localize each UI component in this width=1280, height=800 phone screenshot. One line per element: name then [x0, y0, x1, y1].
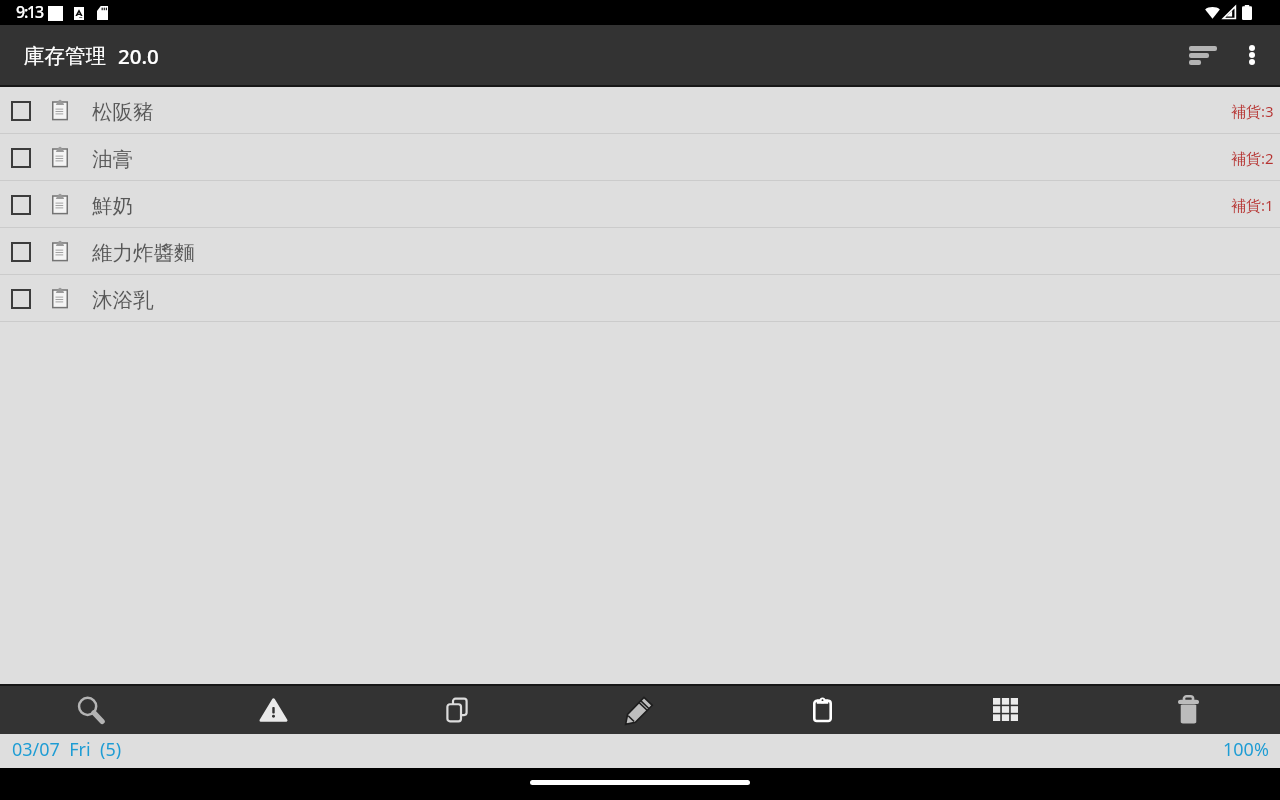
button[interactable]: 維力炸醬麵 — [0, 228, 1280, 274]
staticText: 庫存管理 — [24, 43, 106, 69]
button[interactable]: Edit — [548, 686, 731, 734]
button[interactable]: Warnings — [182, 686, 365, 734]
button[interactable]: Search — [0, 686, 182, 734]
staticText: 補貨:3 — [1231, 101, 1274, 121]
staticText: 20.0 — [118, 42, 159, 70]
button[interactable]: Copy — [365, 686, 548, 734]
staticText: 油膏 — [92, 146, 133, 172]
button[interactable]: Delete — [1097, 686, 1280, 734]
button[interactable]: Grid view — [914, 686, 1097, 734]
staticText: 9:13 — [16, 1, 44, 23]
staticText: 維力炸醬麵 — [92, 240, 195, 266]
button[interactable]: Sort — [1168, 27, 1224, 83]
button[interactable]: More options — [1224, 27, 1280, 83]
button[interactable]: 油膏 — [0, 134, 1280, 180]
button[interactable]: Clipboard — [731, 686, 914, 734]
staticText: 鮮奶 — [92, 193, 133, 219]
staticText: 沐浴乳 — [92, 287, 154, 313]
staticText: 03/07 Fri (5) — [12, 737, 122, 762]
button[interactable]: 松阪豬 — [0, 87, 1280, 133]
staticText: 100% — [1223, 737, 1269, 762]
button[interactable]: 鮮奶 — [0, 181, 1280, 227]
staticText: 補貨:1 — [1231, 195, 1274, 215]
button[interactable]: 沐浴乳 — [0, 275, 1280, 321]
staticText: 補貨:2 — [1231, 148, 1274, 168]
staticText: 松阪豬 — [92, 99, 154, 125]
